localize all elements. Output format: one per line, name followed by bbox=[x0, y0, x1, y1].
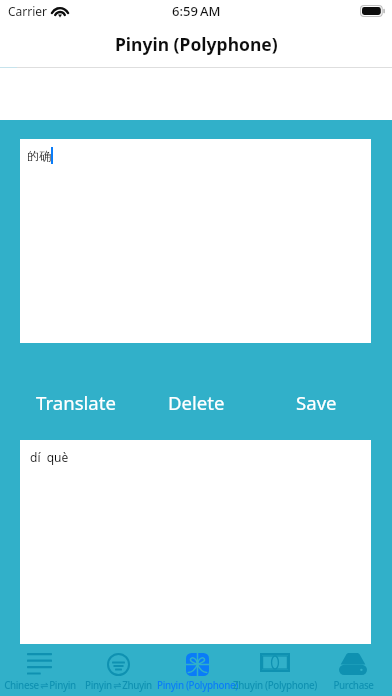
staticText: Delete bbox=[168, 390, 225, 415]
staticText: 的确 bbox=[27, 148, 51, 163]
staticText: Purchase bbox=[333, 679, 374, 692]
staticText: Pinyin ⇌ Zhuyin bbox=[85, 679, 152, 692]
button[interactable]: Translate bbox=[16, 390, 136, 415]
staticText: Translate bbox=[36, 390, 116, 415]
button[interactable]: Chinese text input bbox=[20, 139, 371, 343]
button[interactable]: dí què bbox=[20, 440, 371, 644]
button[interactable]: Pinyin to Zhuyin bbox=[79, 644, 158, 696]
staticText: Chinese ⇌ Pinyin bbox=[4, 679, 76, 692]
staticText: Pinyin (Polyphone) bbox=[115, 32, 278, 56]
button[interactable]: Zhuyin Polyphone bbox=[236, 644, 314, 696]
staticText: Zhuyin (Polyphone) bbox=[233, 679, 317, 692]
staticText: Carrier bbox=[8, 3, 48, 19]
staticText: Save bbox=[296, 390, 337, 415]
button[interactable]: Chinese to Pinyin bbox=[0, 644, 79, 696]
button[interactable]: Save bbox=[256, 390, 376, 415]
button[interactable]: Purchase bbox=[314, 644, 392, 696]
staticText: Pinyin (Polyphone) bbox=[157, 679, 238, 692]
staticText: dí què bbox=[30, 449, 69, 465]
staticText: 6:59 AM bbox=[172, 2, 221, 20]
button[interactable]: Pinyin Polyphone bbox=[158, 644, 236, 696]
button[interactable]: Delete bbox=[136, 390, 256, 415]
